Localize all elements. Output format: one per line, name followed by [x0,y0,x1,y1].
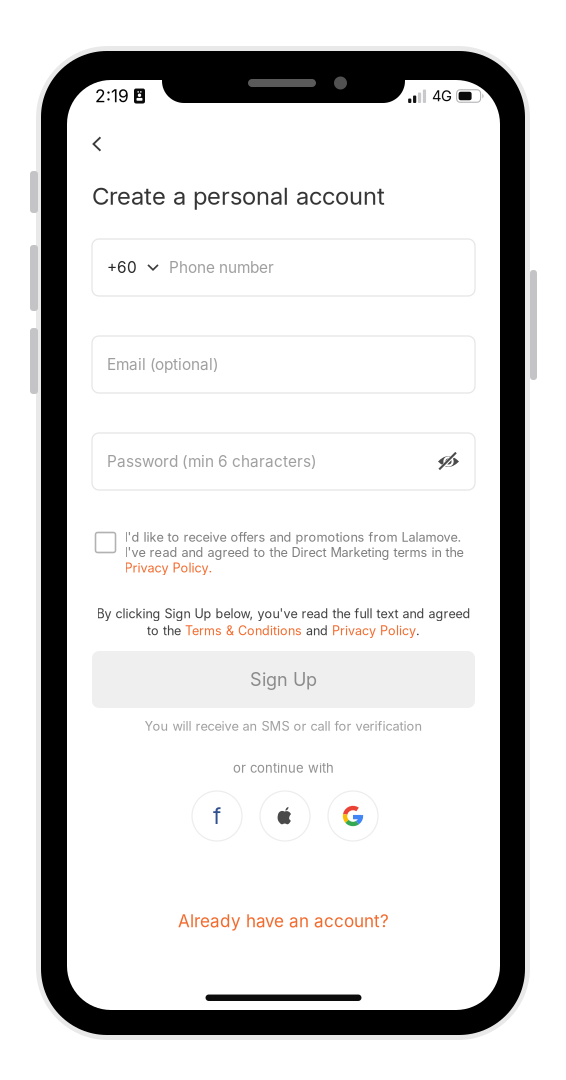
staticText: You will receive an SMS or call for veri… [144,718,422,734]
button[interactable]: Receive offers and promotions [95,529,115,549]
staticText: +60 [107,258,137,277]
staticText: or continue with [233,760,334,776]
button[interactable]: Continue with Google [328,791,378,841]
staticText: Terms & Conditions [185,623,302,638]
staticText: 4G [432,87,452,105]
button[interactable]: Already have an account? [153,902,413,940]
staticText: Password (min 6 characters) [107,452,317,471]
button[interactable]: Back [75,122,119,166]
staticText: Already have an account? [178,911,389,931]
button[interactable]: Continue with Apple [260,791,310,841]
staticText: Privacy Policy [332,623,416,638]
button[interactable]: Sign Up [92,651,475,708]
staticText: By clicking Sign Up below, you've read t… [96,606,470,621]
staticText: Sign Up [250,669,317,690]
staticText: to the [147,623,185,638]
staticText: Email (optional) [107,355,219,374]
staticText: Phone number [169,258,274,277]
staticText: f [213,802,221,830]
staticText: Create a personal account [92,181,385,210]
staticText: Privacy Policy. [124,560,212,575]
staticText: I've read and agreed to the Direct Marke… [124,545,463,560]
staticText: I'd like to receive offers and promotion… [124,529,461,545]
staticText: . [416,623,420,638]
button[interactable]: Continue with Facebook [192,791,242,841]
staticText: and [302,623,332,638]
staticText: 2:19 [95,85,129,106]
